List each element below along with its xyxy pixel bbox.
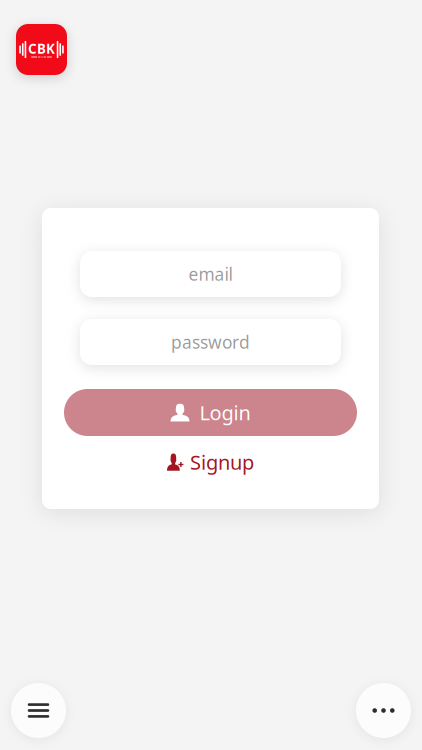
staticText: Login bbox=[199, 399, 250, 426]
staticText: password bbox=[171, 330, 250, 353]
button[interactable]: password bbox=[80, 319, 341, 365]
staticText: CBK bbox=[28, 40, 55, 57]
button[interactable]: Menu bbox=[11, 683, 66, 738]
staticText: Signup bbox=[190, 449, 254, 475]
button[interactable]: More options bbox=[356, 683, 411, 738]
button[interactable]: email bbox=[80, 251, 341, 297]
staticText: email bbox=[188, 262, 232, 285]
button[interactable]: Login bbox=[64, 389, 357, 436]
button[interactable]: Signup bbox=[157, 447, 264, 477]
